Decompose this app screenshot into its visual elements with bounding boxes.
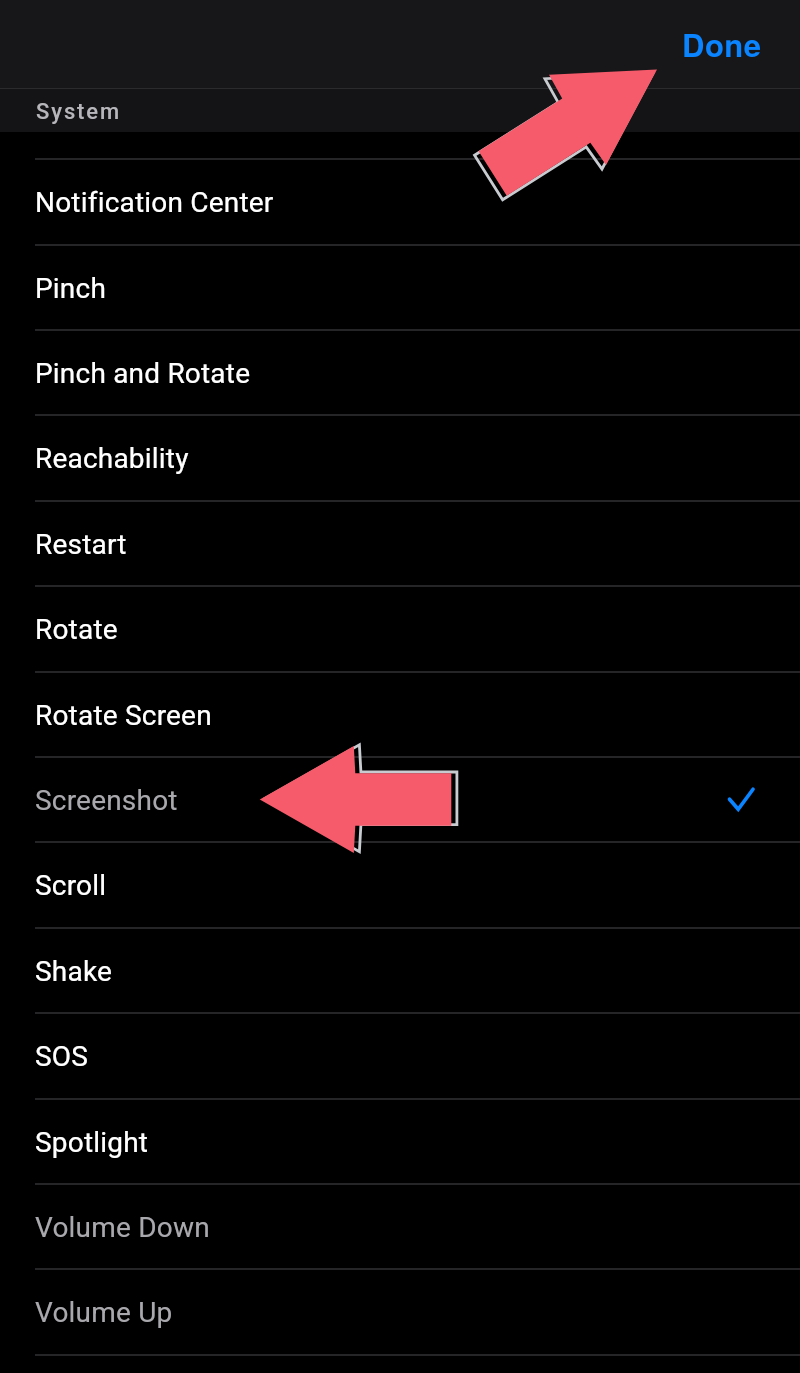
button[interactable]: Screenshot bbox=[0, 756, 800, 841]
staticText: SOS bbox=[35, 1040, 89, 1073]
staticText: Restart bbox=[35, 528, 127, 561]
other: Selected bbox=[727, 787, 755, 812]
button[interactable]: Rotate Screen bbox=[0, 671, 800, 756]
staticText: Volume Up bbox=[35, 1296, 173, 1329]
staticText: Pinch bbox=[35, 272, 107, 305]
staticText: Screenshot bbox=[35, 784, 178, 817]
staticText: Scroll bbox=[35, 869, 107, 902]
staticText: System bbox=[36, 99, 122, 125]
staticText: Shake bbox=[35, 955, 113, 988]
staticText: Spotlight bbox=[35, 1126, 149, 1159]
button[interactable]: Shake bbox=[0, 927, 800, 1012]
staticText: Done bbox=[682, 22, 762, 66]
button[interactable]: Pinch and Rotate bbox=[0, 329, 800, 414]
staticText: Rotate Screen bbox=[35, 699, 212, 732]
button[interactable]: Restart bbox=[0, 500, 800, 585]
button[interactable]: Done bbox=[672, 18, 772, 70]
button[interactable]: Pinch bbox=[0, 244, 800, 329]
staticText: Notification Center bbox=[35, 186, 274, 219]
button[interactable]: SOS bbox=[0, 1012, 800, 1097]
button[interactable]: Notification Center bbox=[0, 158, 800, 243]
button[interactable]: Scroll bbox=[0, 841, 800, 926]
button[interactable]: Rotate bbox=[0, 585, 800, 670]
button[interactable]: Volume Down bbox=[0, 1183, 800, 1268]
button[interactable]: Volume Up bbox=[0, 1268, 800, 1353]
staticText: Rotate bbox=[35, 613, 118, 646]
button[interactable]: Reachability bbox=[0, 414, 800, 499]
button[interactable]: Spotlight bbox=[0, 1098, 800, 1183]
staticText: Volume Down bbox=[35, 1211, 210, 1244]
staticText: Pinch and Rotate bbox=[35, 357, 251, 390]
staticText: Reachability bbox=[35, 442, 189, 475]
